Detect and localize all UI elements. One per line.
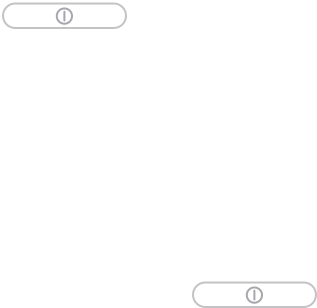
- button[interactable]: Info: [3, 3, 126, 28]
- button[interactable]: Info: [193, 282, 316, 307]
